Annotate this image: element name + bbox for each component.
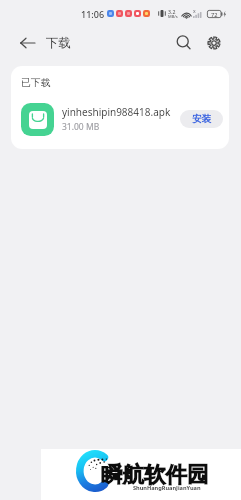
button[interactable]: 安装 [180, 110, 223, 128]
staticText: x [193, 8, 196, 15]
staticText: MB/s [168, 14, 178, 19]
staticText: 72 [211, 11, 218, 19]
staticText: 下载 [46, 35, 71, 51]
staticText: ShunHangRuanJianYuan [133, 484, 201, 492]
staticText: 安装 [192, 113, 211, 125]
button[interactable]: Settings [200, 29, 227, 56]
staticText: 3.2 [168, 8, 176, 15]
button[interactable]: yinheshipin988418.apk [21, 99, 223, 139]
staticText: 11:06 [81, 8, 105, 20]
staticText: 瞬航软件园 [101, 461, 209, 488]
staticText: 已下载 [21, 77, 51, 89]
button[interactable]: Back [14, 29, 41, 56]
staticText: 31.00 MB [62, 121, 100, 133]
staticText: yinheshipin988418.apk [62, 105, 171, 119]
button[interactable]: Search [170, 29, 197, 56]
